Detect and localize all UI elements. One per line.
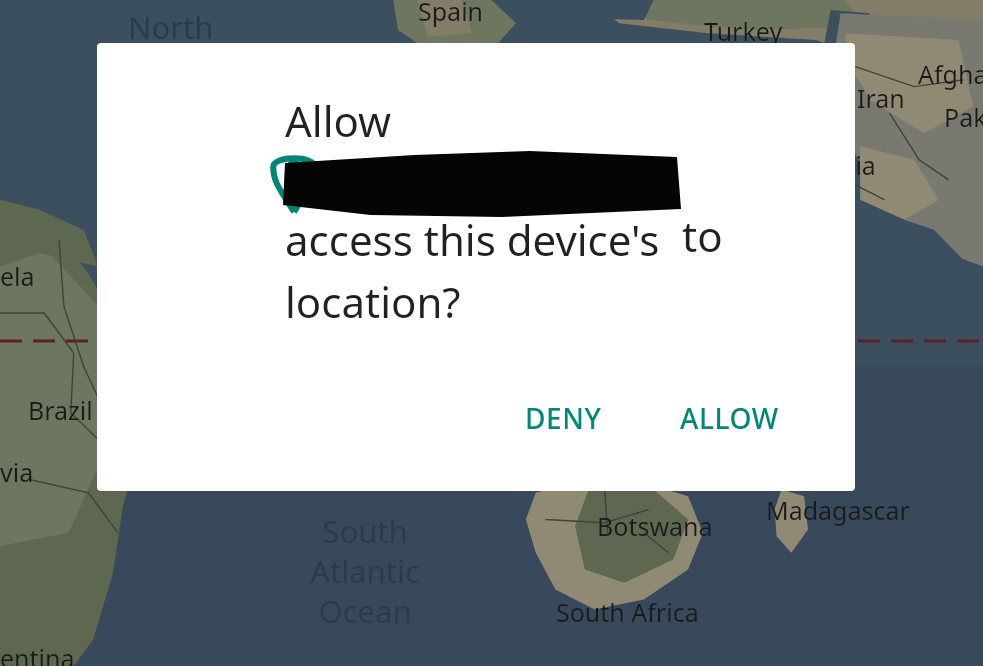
staticText: DENY: [525, 399, 602, 437]
staticText: Afghan: [918, 57, 983, 91]
staticText: South Africa: [556, 595, 699, 629]
staticText: North: [128, 6, 214, 48]
staticText: Allow: [285, 92, 392, 149]
staticText: entina: [0, 641, 75, 666]
staticText: Iran: [857, 81, 905, 115]
staticText: Brazil: [28, 393, 93, 427]
button[interactable]: DENY: [517, 393, 610, 443]
staticText: bia: [840, 148, 876, 182]
staticText: ela: [0, 259, 35, 293]
staticText: Botswana: [597, 509, 713, 543]
staticText: Madagascar: [766, 493, 910, 527]
staticText: Turkey: [704, 14, 783, 48]
staticText: ALLOW: [680, 399, 779, 437]
staticText: Paki: [944, 100, 983, 134]
button[interactable]: ALLOW: [672, 393, 787, 443]
staticText: access this device's location?: [285, 211, 660, 330]
staticText: Spain: [418, 0, 484, 28]
staticText: via: [0, 455, 34, 489]
staticText: South Atlantic Ocean: [310, 510, 420, 632]
staticText: to: [682, 207, 723, 264]
